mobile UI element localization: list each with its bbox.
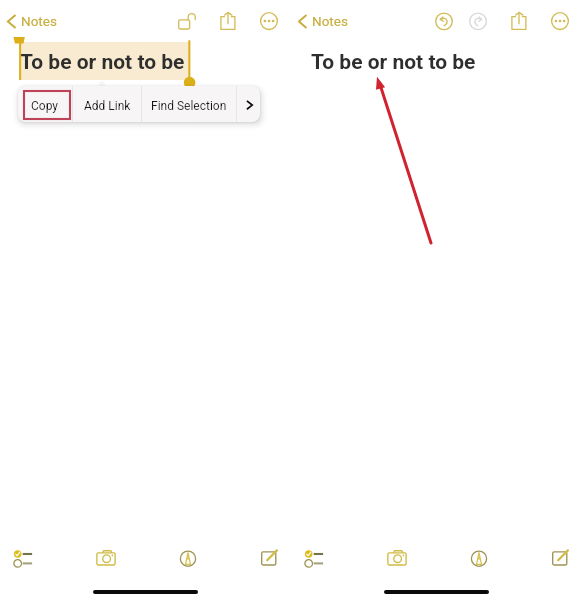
- button[interactable]: Add Link: [73, 86, 141, 122]
- button[interactable]: Checklist: [298, 545, 330, 573]
- button[interactable]: Share: [213, 6, 243, 36]
- staticText: Notes: [312, 13, 348, 29]
- staticText: To be or not to be: [20, 50, 185, 75]
- button[interactable]: Notes: [295, 8, 351, 34]
- staticText: To be or not to be: [311, 50, 476, 75]
- button[interactable]: Checklist: [7, 545, 39, 573]
- button[interactable]: More actions: [237, 86, 260, 122]
- button[interactable]: Camera: [381, 545, 413, 573]
- button[interactable]: New note: [544, 545, 576, 573]
- staticText: Add Link: [84, 99, 131, 113]
- button[interactable]: New note: [253, 545, 285, 573]
- button[interactable]: Find Selection: [142, 86, 236, 122]
- staticText: Copy: [31, 99, 59, 113]
- button[interactable]: Unlock: [172, 6, 202, 36]
- button[interactable]: More: [254, 6, 284, 36]
- staticText: Find Selection: [151, 99, 227, 113]
- button[interactable]: Camera: [90, 545, 122, 573]
- button[interactable]: More: [545, 6, 575, 36]
- button[interactable]: Share: [504, 6, 534, 36]
- button[interactable]: Redo: [463, 6, 493, 36]
- staticText: Notes: [21, 13, 57, 29]
- button[interactable]: Markup: [463, 545, 495, 573]
- button[interactable]: Markup: [172, 545, 204, 573]
- button[interactable]: Notes: [4, 8, 60, 34]
- button[interactable]: Copy: [18, 86, 72, 122]
- button[interactable]: Undo: [429, 6, 459, 36]
